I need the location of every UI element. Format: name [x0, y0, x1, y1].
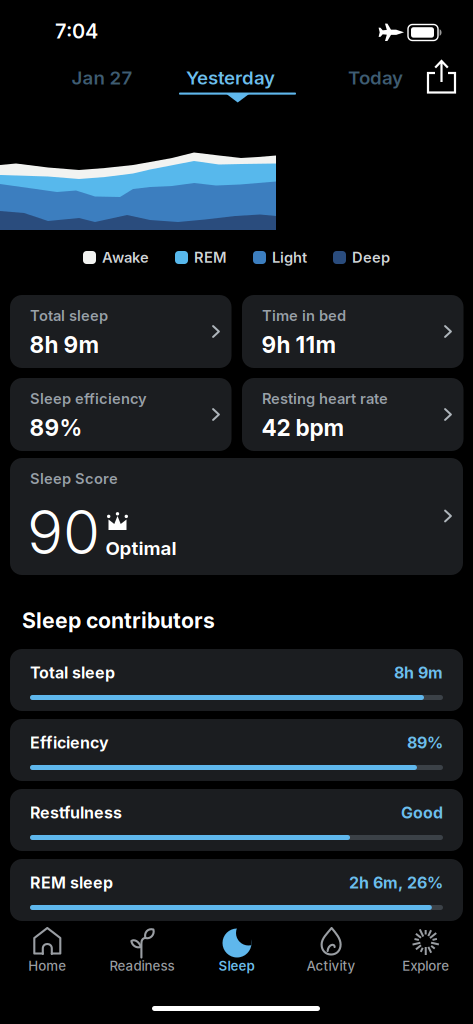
- staticText: Sleep: [218, 958, 254, 974]
- staticText: 7:04: [55, 19, 98, 43]
- staticText: 9h 11m: [261, 331, 336, 358]
- staticText: Optimal: [105, 537, 176, 559]
- staticText: Time in bed: [262, 307, 346, 324]
- button[interactable]: Home: [0, 920, 95, 992]
- staticText: Deep: [352, 249, 390, 266]
- staticText: Light: [272, 249, 307, 266]
- staticText: Yesterday: [186, 67, 275, 89]
- staticText: Activity: [307, 958, 356, 974]
- staticText: Explore: [402, 958, 449, 974]
- button[interactable]: Time in bed: [242, 295, 463, 368]
- staticText: Sleep efficiency: [30, 390, 147, 407]
- staticText: 89%: [407, 733, 443, 752]
- button[interactable]: Yesterday: [170, 67, 290, 89]
- staticText: Efficiency: [30, 733, 109, 752]
- staticText: Sleep contributors: [22, 608, 215, 633]
- staticText: 42 bpm: [261, 414, 344, 441]
- button[interactable]: Share: [425, 58, 459, 96]
- button[interactable]: Total sleep: [10, 295, 231, 368]
- button[interactable]: Sleep efficiency: [10, 378, 231, 451]
- button[interactable]: Jan 27: [52, 67, 152, 89]
- staticText: Good: [401, 803, 443, 822]
- button[interactable]: Efficiency: [10, 719, 463, 781]
- button[interactable]: Explore: [378, 920, 473, 992]
- staticText: 8h 9m: [29, 331, 99, 358]
- staticText: 8h 9m: [394, 663, 443, 682]
- button[interactable]: Restfulness: [10, 789, 463, 851]
- staticText: 89%: [29, 414, 82, 441]
- staticText: Home: [28, 958, 66, 974]
- staticText: Jan 27: [71, 67, 132, 89]
- staticText: Resting heart rate: [262, 390, 388, 407]
- button[interactable]: Resting heart rate: [242, 378, 463, 451]
- staticText: Today: [348, 67, 403, 89]
- staticText: REM sleep: [30, 873, 113, 892]
- button[interactable]: Total sleep: [10, 649, 463, 711]
- staticText: Restfulness: [30, 803, 122, 822]
- button[interactable]: Today: [330, 67, 420, 89]
- staticText: Total sleep: [30, 663, 115, 682]
- button[interactable]: Activity: [284, 920, 378, 992]
- button[interactable]: Sleep: [189, 920, 284, 992]
- staticText: 2h 6m, 26%: [349, 873, 443, 892]
- staticText: Sleep Score: [30, 470, 118, 487]
- staticText: REM: [194, 249, 227, 266]
- staticText: Total sleep: [30, 307, 108, 324]
- button[interactable]: Readiness: [95, 920, 189, 992]
- button[interactable]: REM sleep: [10, 859, 463, 921]
- staticText: 90: [27, 497, 100, 568]
- staticText: Awake: [102, 249, 149, 266]
- staticText: Readiness: [109, 958, 174, 974]
- button[interactable]: Sleep Score: [10, 458, 463, 575]
